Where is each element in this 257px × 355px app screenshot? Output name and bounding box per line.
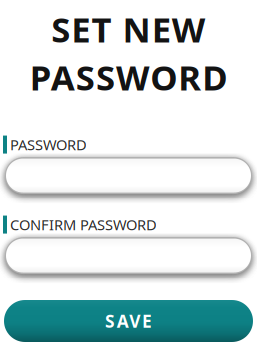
staticText: CONFIRM PASSWORD: [10, 215, 157, 234]
staticText: PASSWORD: [10, 135, 87, 154]
staticText: PASSWORD: [30, 54, 227, 100]
staticText: SET NEW: [51, 6, 206, 52]
staticText: SAVE: [105, 309, 152, 332]
button[interactable]: SAVE: [0, 300, 257, 342]
